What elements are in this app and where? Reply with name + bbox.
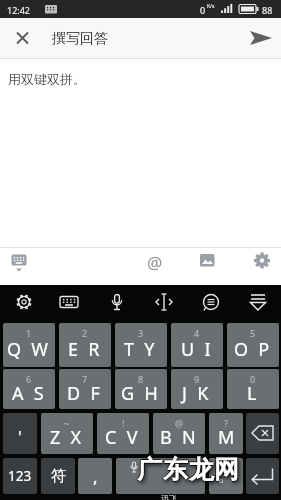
staticText: 12:42: [7, 4, 31, 16]
staticText: M: [218, 425, 235, 450]
staticText: 广东龙网: [136, 454, 239, 485]
staticText: 撰写回答: [52, 30, 108, 48]
staticText: 广东龙网: [137, 455, 240, 486]
staticText: 88: [262, 4, 273, 16]
staticText: C V: [105, 425, 141, 450]
staticText: 1: [26, 327, 32, 339]
staticText: J K: [182, 381, 212, 406]
staticText: ,: [93, 465, 98, 488]
staticText: A S: [12, 381, 47, 406]
staticText: D F: [67, 381, 103, 406]
staticText: L: [247, 381, 260, 406]
staticText: 123: [8, 467, 32, 485]
staticText: 3: [138, 327, 144, 339]
staticText: 符: [51, 467, 66, 486]
staticText: 9: [194, 373, 200, 385]
staticText: 4: [194, 327, 200, 339]
staticText: Q W: [7, 337, 51, 362]
staticText: 7: [82, 373, 88, 385]
staticText: ': [18, 426, 22, 448]
staticText: 0: [200, 4, 206, 16]
staticText: 8: [138, 373, 144, 385]
staticText: K/s: [207, 3, 215, 10]
staticText: G H: [121, 381, 161, 406]
staticText: E R: [68, 337, 103, 362]
staticText: 广东龙网: [137, 454, 240, 485]
staticText: !: [122, 417, 125, 429]
staticText: O P: [234, 337, 273, 362]
staticText: 用双键双拼。: [8, 71, 86, 87]
staticText: @: [175, 417, 184, 429]
staticText: 0: [250, 373, 256, 385]
staticText: ~: [64, 417, 70, 429]
staticText: B N: [160, 425, 199, 450]
staticText: Z X: [50, 425, 84, 450]
staticText: 6: [26, 373, 32, 385]
staticText: U I: [181, 337, 214, 362]
staticText: 讯飞: [161, 493, 177, 500]
staticText: 5: [250, 327, 256, 339]
staticText: 广东龙网: [137, 453, 240, 484]
staticText: 广东龙网: [138, 454, 241, 485]
staticText: T Y: [124, 337, 158, 362]
staticText: ?: [224, 417, 228, 429]
staticText: 。: [218, 466, 234, 486]
staticText: @: [147, 251, 163, 274]
staticText: 2: [82, 327, 88, 339]
